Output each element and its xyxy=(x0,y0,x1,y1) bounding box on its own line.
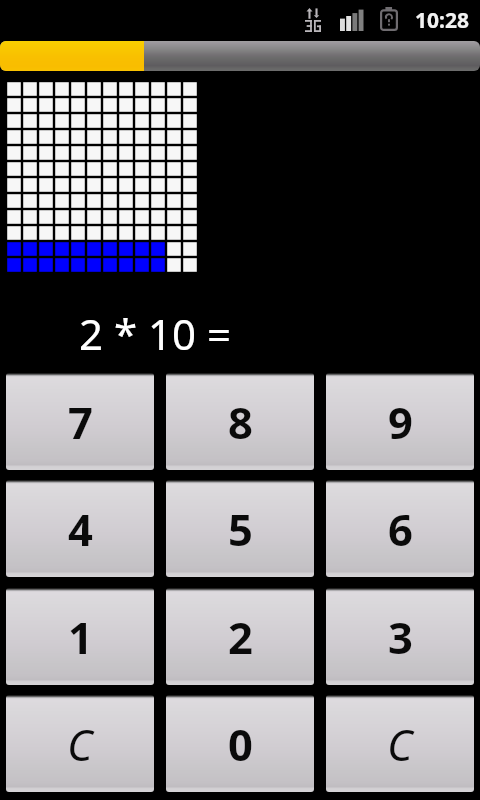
staticText: 2 * 10 = xyxy=(79,305,242,362)
button[interactable]: 8 xyxy=(166,373,314,470)
button[interactable]: 0 xyxy=(166,695,314,792)
button[interactable]: 9 xyxy=(326,373,474,470)
button[interactable]: 6 xyxy=(326,480,474,577)
staticText: 3 xyxy=(388,607,413,666)
button[interactable]: 7 xyxy=(6,373,154,470)
staticText: 10:28 xyxy=(415,6,469,35)
button[interactable]: 4 xyxy=(6,480,154,577)
button[interactable]: 1 xyxy=(6,588,154,685)
staticText: C xyxy=(67,714,93,773)
staticText: 2 xyxy=(228,607,253,666)
staticText: 1 xyxy=(68,607,93,666)
staticText: 7 xyxy=(68,392,93,451)
button[interactable]: 2 xyxy=(166,588,314,685)
button[interactable]: Clear all xyxy=(326,695,474,792)
staticText: 0 xyxy=(228,714,253,773)
button[interactable]: 5 xyxy=(166,480,314,577)
staticText: 8 xyxy=(228,392,253,451)
staticText: 5 xyxy=(228,499,253,558)
button[interactable]: 3 xyxy=(326,588,474,685)
staticText: 6 xyxy=(388,499,413,558)
staticText: C xyxy=(387,714,413,773)
staticText: 4 xyxy=(68,499,93,558)
button[interactable]: Clear xyxy=(6,695,154,792)
staticText: 9 xyxy=(388,392,413,451)
